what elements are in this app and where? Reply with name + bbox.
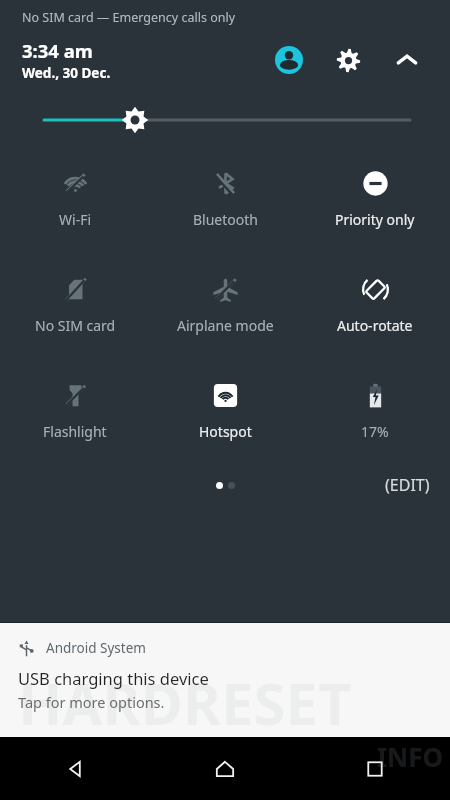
staticText: Android System xyxy=(46,639,146,657)
staticText: 3:34 am xyxy=(22,38,93,63)
button[interactable]: No SIM card xyxy=(0,270,150,337)
staticText: USB charging this device xyxy=(18,667,209,689)
staticText: (EDIT) xyxy=(385,474,430,496)
button[interactable]: Brightness xyxy=(0,98,450,142)
button[interactable]: Back xyxy=(0,737,150,800)
button[interactable]: Collapse xyxy=(390,43,424,77)
button[interactable]: User profile xyxy=(272,43,306,77)
staticText: Wi-Fi xyxy=(59,210,92,229)
staticText: 17% xyxy=(361,422,389,441)
button[interactable]: Hotspot xyxy=(150,376,300,443)
staticText: Tap for more options. xyxy=(18,692,165,712)
staticText: Hotspot xyxy=(199,422,252,441)
button[interactable]: Android System xyxy=(0,623,450,737)
staticText: Wed., 30 Dec. xyxy=(22,64,111,82)
button[interactable]: Home xyxy=(150,737,300,800)
button[interactable]: Auto-rotate xyxy=(300,270,450,337)
button[interactable]: Bluetooth xyxy=(150,164,300,231)
staticText: Bluetooth xyxy=(193,210,258,229)
button[interactable]: Airplane mode xyxy=(150,270,300,337)
staticText: No SIM card — Emergency calls only xyxy=(22,9,236,26)
staticText: No SIM card xyxy=(35,316,116,335)
button[interactable]: Priority only xyxy=(300,164,450,231)
button[interactable]: Wi-Fi xyxy=(0,164,150,231)
staticText: Flashlight xyxy=(43,422,107,441)
button[interactable]: Recent apps xyxy=(300,737,450,800)
button[interactable]: Flashlight xyxy=(0,376,150,443)
button[interactable]: 17% xyxy=(300,376,450,443)
staticText: Priority only xyxy=(335,210,415,229)
staticText: Airplane mode xyxy=(177,316,274,335)
staticText: HARDRESET xyxy=(18,663,352,742)
staticText: Auto-rotate xyxy=(337,316,413,335)
staticText: INFO xyxy=(377,739,444,774)
button[interactable]: Settings xyxy=(331,43,365,77)
button[interactable]: (EDIT) xyxy=(381,471,434,499)
